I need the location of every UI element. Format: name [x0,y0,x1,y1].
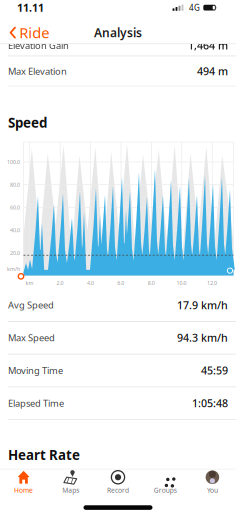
staticText: Record [107,486,129,495]
staticText: Max Speed [8,331,55,344]
staticText: 11.11 [17,1,44,15]
staticText: Moving Time [8,364,63,377]
button[interactable]: Groups [142,469,189,497]
staticText: 100.0 [7,158,20,166]
staticText: 4.0 [87,279,94,287]
staticText: 1:05:48 [192,396,228,410]
staticText: Max Elevation [8,65,67,77]
staticText: 17.9 km/h [177,298,228,312]
staticText: km/h [7,265,20,273]
staticText: 8.0 [148,279,155,287]
staticText: Groups [154,486,177,495]
button[interactable]: Record [94,469,142,497]
staticText: 10.0 [177,279,187,287]
staticText: 20.0 [10,249,20,256]
staticText: 40.0 [10,227,20,234]
staticText: 80.0 [10,181,20,188]
staticText: Heart Rate [8,446,80,464]
staticText: 1,464 m [188,38,228,53]
staticText: Home [14,486,33,495]
staticText: 45:59 [201,363,228,377]
button[interactable]: Maps [47,469,94,497]
button[interactable]: Home [0,469,47,497]
staticText: Elevation Gain [8,39,69,52]
staticText: Elapsed Time [8,397,64,409]
staticText: 6.0 [117,279,124,287]
staticText: You [207,486,218,495]
button[interactable]: Ride [3,20,49,46]
staticText: Speed [8,114,47,131]
button[interactable]: You [189,469,236,497]
staticText: 2.0 [56,279,63,287]
staticText: Ride [19,23,49,42]
staticText: 60.0 [10,204,20,211]
staticText: Avg Speed [8,299,54,311]
staticText: Analysis [94,25,142,41]
staticText: 494 m [197,64,228,78]
staticText: Maps [62,486,79,495]
staticText: km [25,279,33,287]
staticText: 12.0 [207,279,217,287]
staticText: 4G [189,2,200,13]
staticText: 94.3 km/h [177,331,228,345]
